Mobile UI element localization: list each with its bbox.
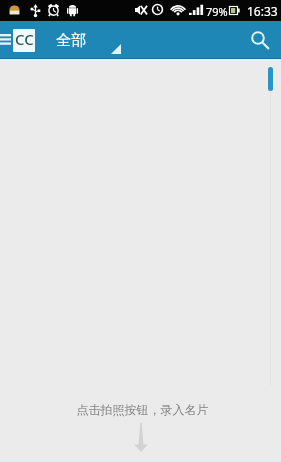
button[interactable]: Search bbox=[239, 21, 281, 58]
staticText: 16:33 bbox=[247, 3, 278, 19]
staticText: 79% bbox=[206, 4, 228, 19]
staticText: CC bbox=[15, 29, 34, 49]
staticText: 点击拍照按钮，录入名片 bbox=[2, 402, 281, 417]
button[interactable]: CC bbox=[13, 29, 35, 52]
staticText: 全部 bbox=[56, 31, 86, 50]
button[interactable]: 全部 bbox=[50, 21, 122, 58]
button[interactable]: Menu bbox=[0, 21, 11, 58]
